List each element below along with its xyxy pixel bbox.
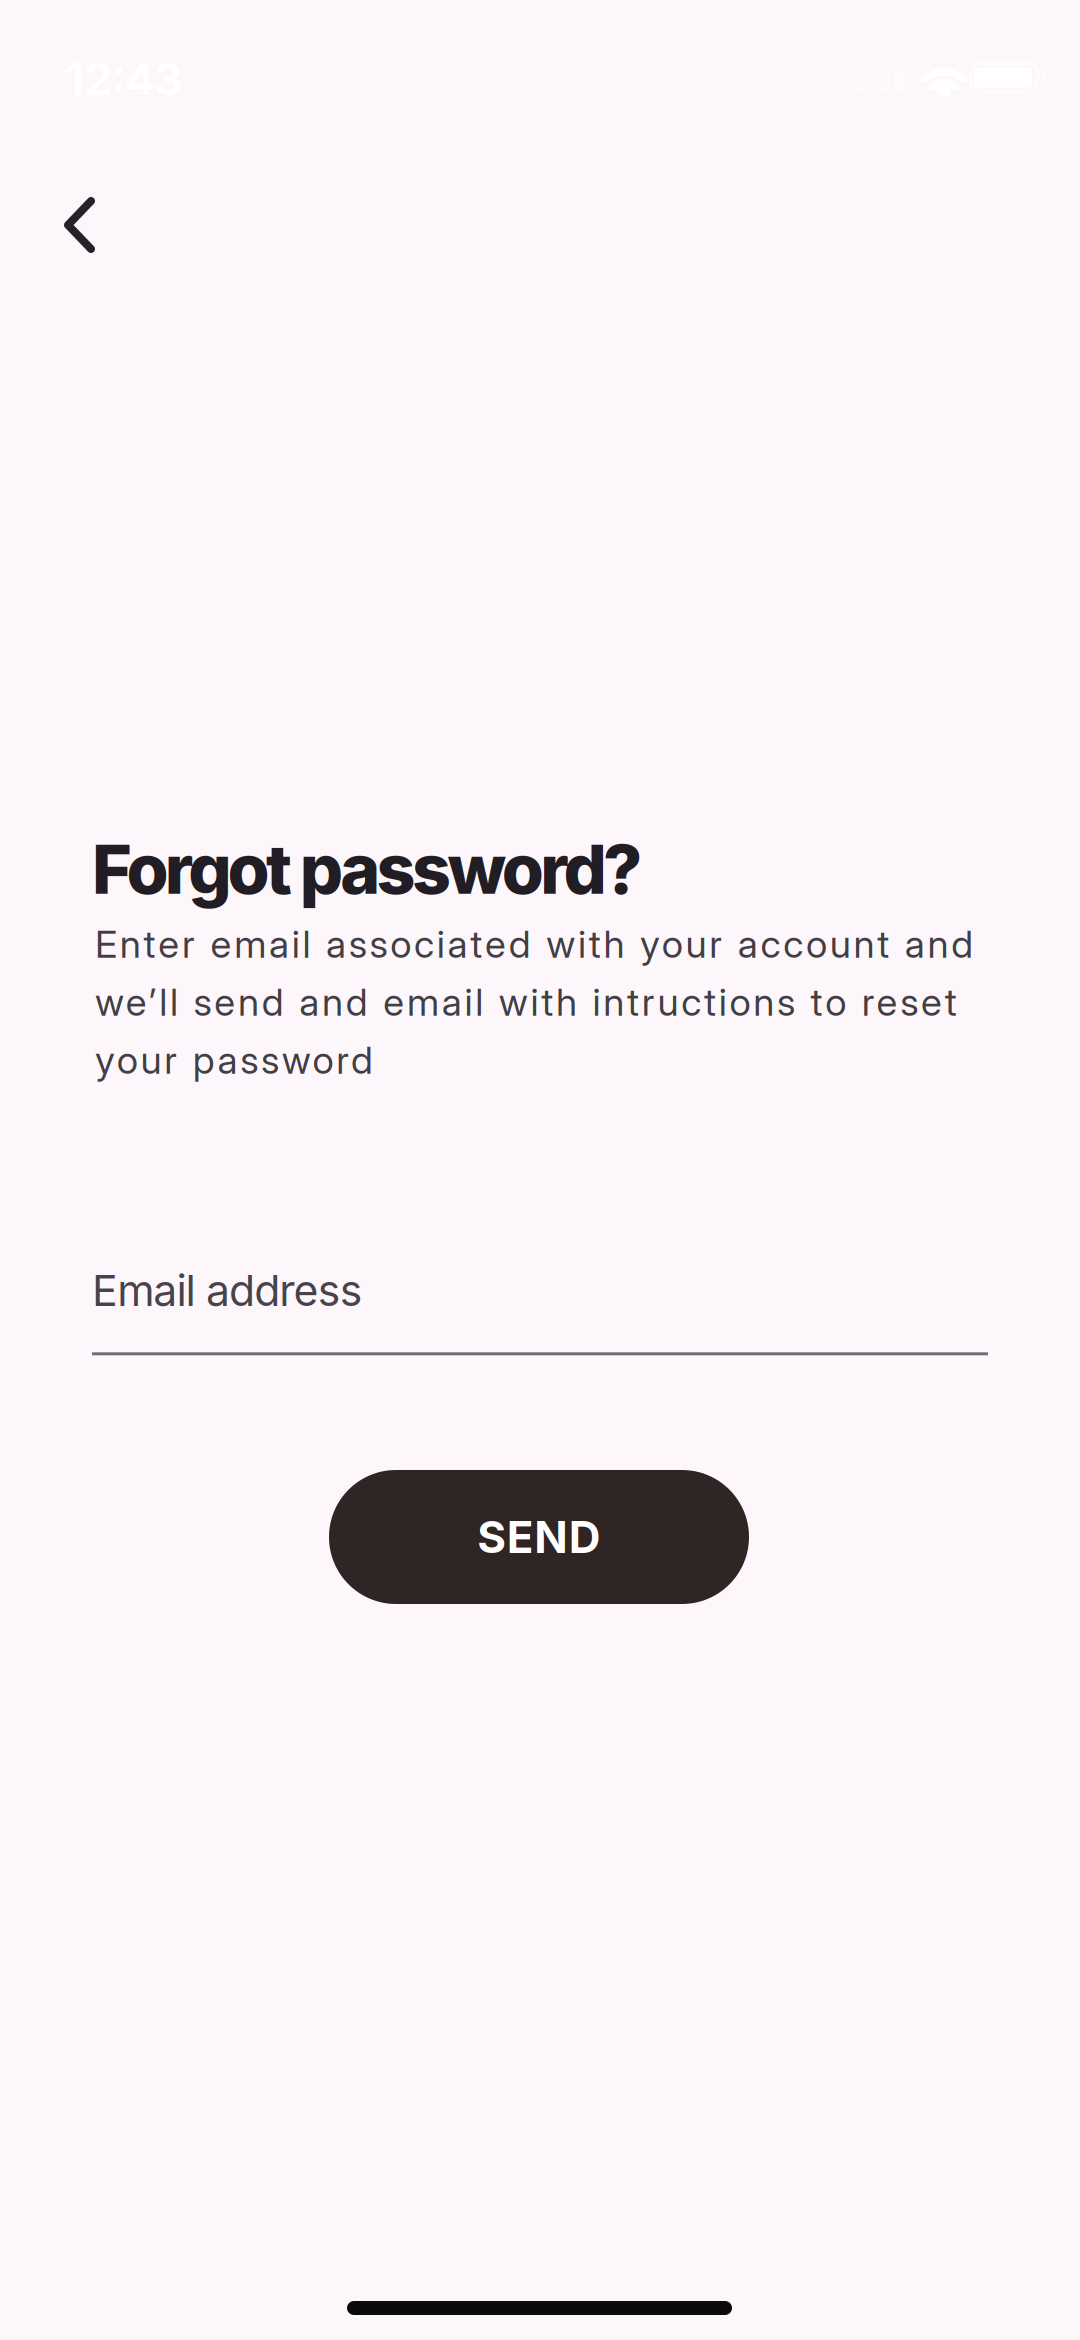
staticText: 12:43 <box>65 52 182 106</box>
button[interactable]: Email address <box>92 1265 988 1355</box>
staticText: Enter email associated with your account… <box>95 921 973 1083</box>
staticText: Email address <box>92 1265 363 1316</box>
button[interactable]: SEND <box>329 1470 749 1604</box>
staticText: Forgot password? <box>92 828 642 910</box>
button[interactable]: Back <box>60 193 100 257</box>
staticText: SEND <box>477 1510 601 1564</box>
